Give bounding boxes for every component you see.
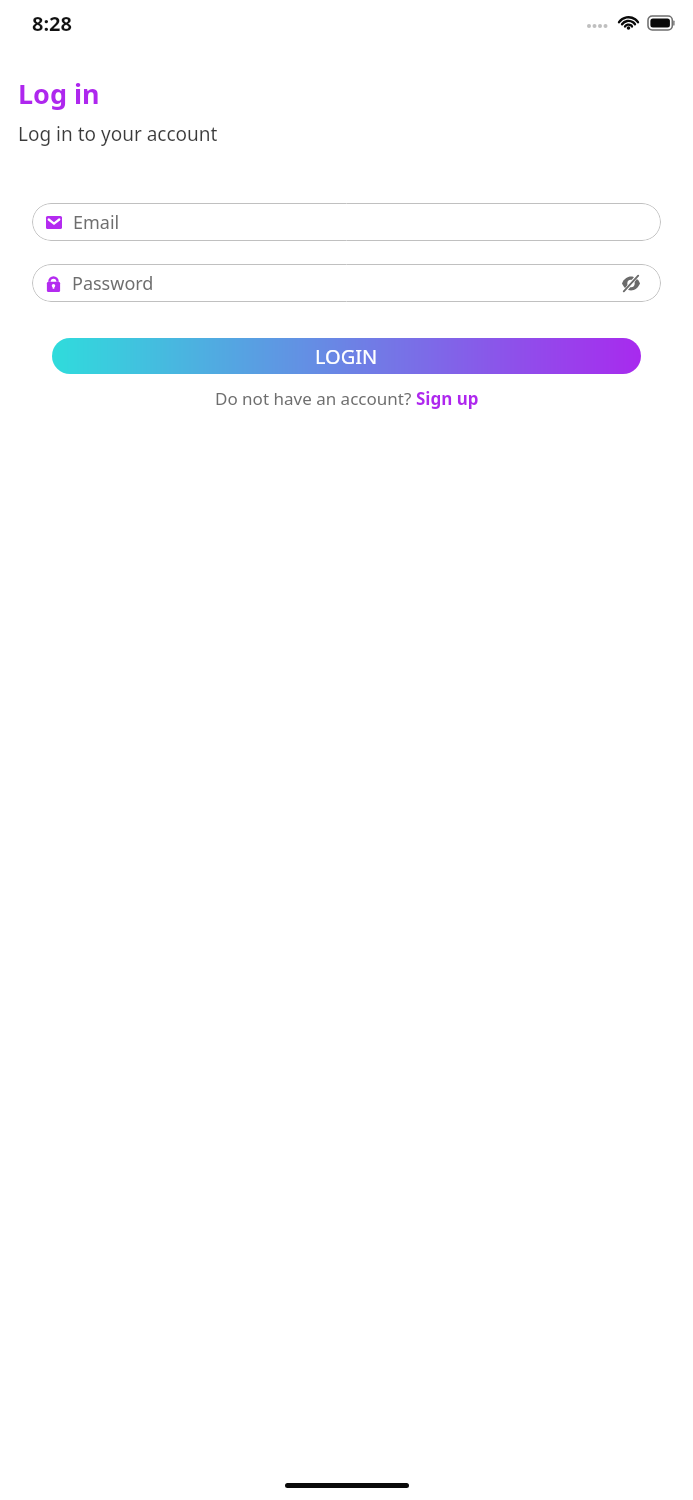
staticText: Do not have an account?: [215, 387, 416, 410]
button[interactable]: Email: [32, 203, 661, 241]
button[interactable]: Show password: [617, 269, 645, 297]
staticText: Email: [73, 210, 645, 235]
staticText: Sign up: [416, 387, 479, 410]
staticText: LOGIN: [315, 343, 378, 370]
staticText: Log in to your account: [18, 121, 218, 147]
staticText: Log in: [18, 75, 100, 112]
button[interactable]: LOGIN: [52, 338, 641, 374]
button[interactable]: Sign up: [416, 387, 479, 410]
button[interactable]: Password: [32, 264, 661, 302]
staticText: 8:28: [32, 10, 72, 37]
staticText: Password: [72, 271, 617, 296]
